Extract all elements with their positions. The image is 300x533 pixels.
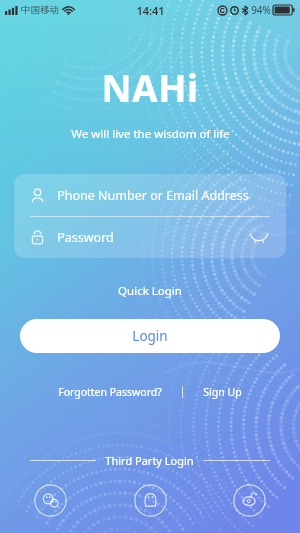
button[interactable]: Password (14, 217, 286, 258)
button[interactable]: Forgotten Password? (52, 381, 168, 403)
staticText: Quick Login (118, 283, 182, 299)
button[interactable]: Weibo login (233, 484, 266, 517)
staticText: Forgotten Password? (58, 385, 162, 399)
staticText: We will live the wisdom of life (71, 126, 230, 142)
button[interactable]: Show password (246, 225, 272, 251)
button[interactable]: Sign Up (197, 381, 248, 403)
staticText: NAHi (101, 62, 199, 112)
button[interactable]: Phone Number or Email Address (14, 174, 286, 216)
staticText: Phone Number or Email Address (57, 187, 249, 204)
button[interactable]: WeChat login (34, 484, 67, 517)
button[interactable]: QQ login (134, 484, 167, 517)
staticText: Sign Up (203, 385, 242, 399)
staticText: Password (57, 229, 114, 246)
staticText: 中国移动 (21, 4, 59, 16)
staticText: 14:41 (136, 3, 165, 18)
staticText: 94% (251, 3, 271, 17)
staticText: Login (132, 327, 168, 345)
button[interactable]: Login (20, 319, 280, 353)
staticText: Third Party Login (105, 453, 194, 468)
button[interactable]: Quick Login (108, 280, 192, 302)
